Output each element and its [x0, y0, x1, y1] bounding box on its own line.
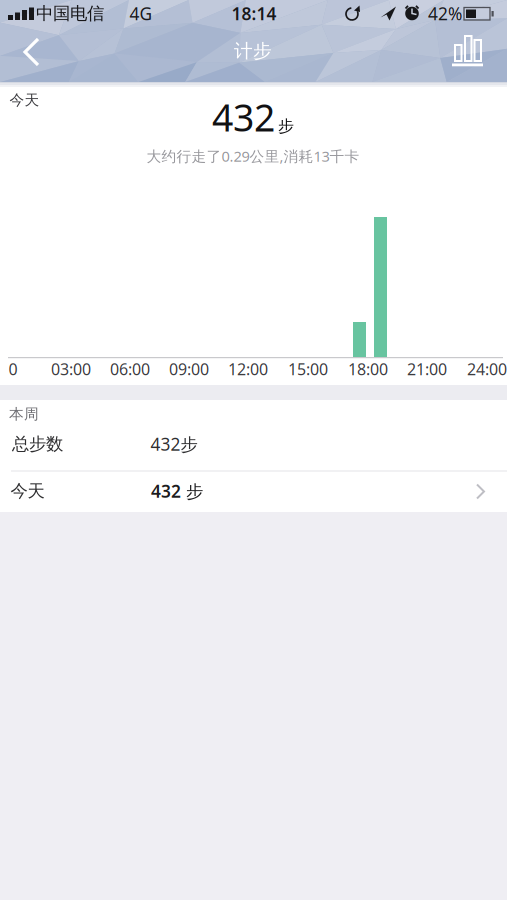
staticText: 计步 [234, 39, 272, 62]
staticText: 24:00 [467, 358, 507, 380]
staticText: 4G [129, 2, 152, 25]
staticText: 21:00 [407, 358, 447, 380]
button[interactable]: Back [7, 28, 63, 76]
staticText: 09:00 [169, 358, 209, 380]
staticText: 今天 [9, 91, 39, 109]
staticText: 今天 [10, 480, 44, 502]
staticText: 12:00 [228, 358, 268, 380]
button[interactable]: History chart [449, 32, 487, 72]
staticText: 18:14 [231, 2, 276, 25]
staticText: 06:00 [110, 358, 150, 380]
staticText: 本周 [9, 405, 39, 423]
staticText: 中国电信 [36, 3, 104, 24]
staticText: 42% [428, 2, 462, 25]
staticText: 432 [212, 92, 275, 142]
staticText: 432 步 [151, 479, 203, 502]
staticText: 0 [8, 358, 17, 380]
staticText: 03:00 [51, 358, 91, 380]
staticText: 大约行走了0.29公里,消耗13千卡 [146, 146, 359, 166]
staticText: 总步数 [12, 433, 63, 455]
staticText: 432步 [150, 432, 197, 455]
staticText: 18:00 [348, 358, 388, 380]
button[interactable]: 今天 [0, 471, 507, 512]
staticText: 15:00 [288, 358, 328, 380]
staticText: 步 [278, 116, 294, 136]
